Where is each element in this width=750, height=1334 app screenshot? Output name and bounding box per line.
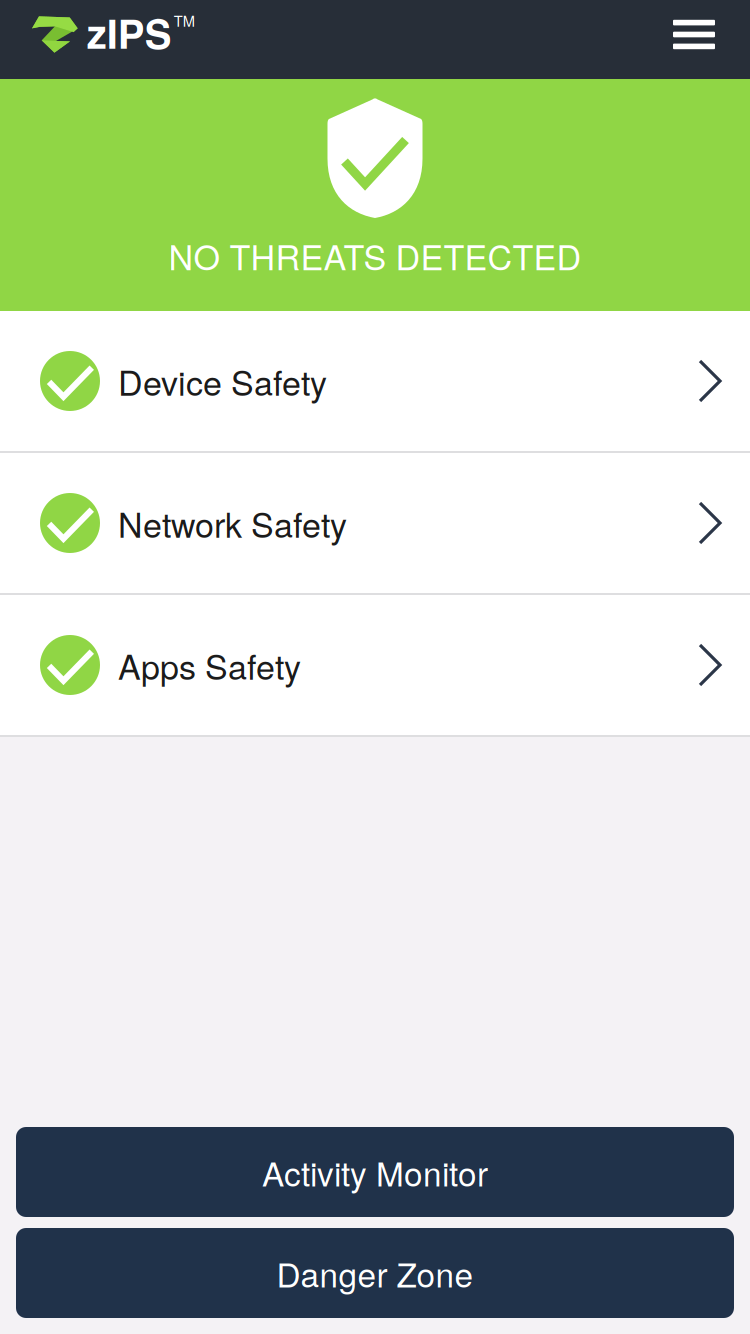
button[interactable]: Activity Monitor xyxy=(16,1127,734,1217)
button[interactable]: Network Safety xyxy=(0,453,750,593)
staticText: Network Safety xyxy=(118,499,347,547)
button[interactable]: Apps Safety xyxy=(0,595,750,735)
button[interactable]: Danger Zone xyxy=(16,1228,734,1318)
button[interactable]: Menu xyxy=(655,3,733,75)
staticText: Activity Monitor xyxy=(262,1148,488,1196)
staticText: Danger Zone xyxy=(276,1249,473,1297)
staticText: Apps Safety xyxy=(118,641,301,689)
button[interactable]: Device Safety xyxy=(0,311,750,451)
staticText: Device Safety xyxy=(118,357,327,405)
staticText: TM xyxy=(174,10,195,31)
staticText: NO THREATS DETECTED xyxy=(168,231,581,280)
staticText: zIPS xyxy=(87,4,172,61)
